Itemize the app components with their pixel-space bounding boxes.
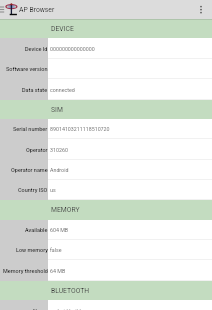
staticText: 310260 <box>50 147 68 153</box>
button[interactable]: Operator <box>0 139 212 160</box>
button[interactable]: Data state <box>0 79 212 100</box>
staticText: 604 MB <box>50 227 69 233</box>
staticText: BLUETOOTH <box>51 287 90 295</box>
button[interactable]: Country ISO <box>0 180 212 200</box>
staticText: Data state <box>22 87 48 93</box>
staticText: Serial number <box>13 126 48 132</box>
staticText: Low memory <box>16 247 48 253</box>
staticText: Operator name <box>11 167 48 173</box>
button[interactable]: Serial number <box>0 119 212 139</box>
button[interactable]: Device Id <box>0 38 212 59</box>
staticText: connected <box>50 87 75 93</box>
staticText: Country ISO <box>18 187 48 193</box>
staticText: Device Id <box>25 46 48 52</box>
staticText: 000000000000000 <box>50 46 95 52</box>
staticText: MEMORY <box>51 206 80 214</box>
button[interactable]: Memory threshold <box>0 260 212 281</box>
staticText: android-build <box>50 308 81 310</box>
staticText: Software version <box>6 66 48 72</box>
staticText: Name <box>33 308 48 310</box>
button[interactable]: Name <box>0 300 212 310</box>
button[interactable]: Software version <box>0 59 212 79</box>
button[interactable]: Low memory <box>0 240 212 260</box>
button[interactable]: SIM <box>0 100 212 119</box>
button[interactable]: DEVICE <box>0 19 212 38</box>
button[interactable]: Operator name <box>0 160 212 180</box>
staticText: SIM <box>51 106 63 114</box>
staticText: AP Browser <box>19 6 55 14</box>
staticText: Available <box>25 227 48 233</box>
staticText: DEVICE <box>51 25 74 33</box>
staticText: Android <box>50 167 69 173</box>
button[interactable]: BLUETOOTH <box>0 281 212 300</box>
staticText: 64 MB <box>50 268 66 274</box>
button[interactable]: More options <box>194 0 212 19</box>
button[interactable]: Navigation drawer <box>0 0 5 19</box>
button[interactable]: Available <box>0 220 212 240</box>
staticText: 89014103211118510720 <box>50 126 110 132</box>
button[interactable]: MEMORY <box>0 200 212 220</box>
staticText: Operator <box>26 147 48 153</box>
staticText: us <box>50 187 56 193</box>
staticText: false <box>50 247 62 253</box>
staticText: Memory threshold <box>3 268 48 274</box>
